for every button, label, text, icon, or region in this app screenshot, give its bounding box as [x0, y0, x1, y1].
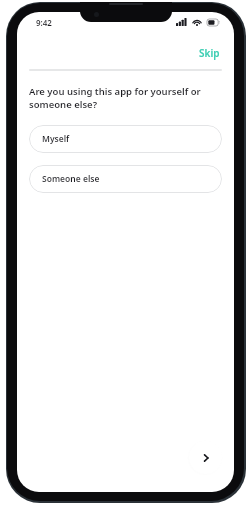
button[interactable]: Someone else	[29, 165, 222, 193]
button[interactable]: Next	[189, 441, 222, 474]
staticText: Myself	[42, 133, 70, 145]
staticText: Are you using this app for yourself or s…	[29, 85, 222, 111]
staticText: 9:42	[36, 17, 52, 28]
staticText: Someone else	[42, 173, 100, 185]
staticText: Skip	[199, 46, 220, 60]
button[interactable]: Skip	[195, 44, 224, 62]
button[interactable]: Myself	[29, 125, 222, 153]
